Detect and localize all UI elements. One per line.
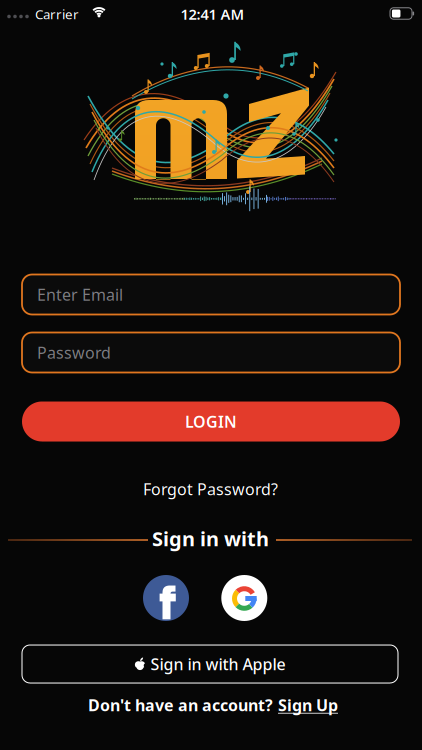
- button[interactable]: Sign in with Google: [221, 575, 267, 621]
- staticText: Carrier: [35, 5, 79, 23]
- staticText: Sign in with Apple: [150, 653, 285, 675]
- staticText: Sign in with: [152, 525, 269, 552]
- button[interactable]: Forgot Password?: [143, 478, 278, 500]
- staticText: Enter Email: [37, 284, 123, 305]
- button[interactable]: Sign in with Facebook: [143, 575, 189, 621]
- staticText: Forgot Password?: [143, 478, 278, 500]
- staticText: LOGIN: [185, 411, 237, 432]
- button[interactable]: Password: [22, 332, 400, 372]
- button[interactable]: Enter Email: [22, 274, 400, 314]
- button[interactable]: Don't have an account?: [88, 694, 338, 716]
- staticText: 12:41 AM: [180, 4, 244, 24]
- staticText: Password: [37, 342, 111, 363]
- button[interactable]: Sign in with Apple: [22, 645, 398, 683]
- staticText: Sign Up: [278, 694, 338, 716]
- staticText: Don't have an account?: [88, 694, 273, 716]
- button[interactable]: LOGIN: [22, 401, 400, 441]
